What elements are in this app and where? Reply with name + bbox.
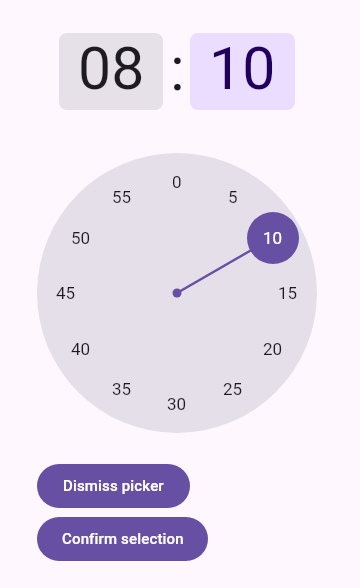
staticText: 08 (78, 34, 145, 103)
staticText: 55 (112, 187, 132, 207)
staticText: : (170, 33, 185, 104)
staticText: 35 (112, 379, 132, 399)
button[interactable]: 0 (37, 153, 317, 433)
staticText: 15 (278, 283, 298, 303)
button[interactable]: 10 (190, 33, 295, 110)
button[interactable]: Confirm selection (37, 517, 208, 561)
staticText: 30 (167, 394, 187, 414)
staticText: 5 (228, 187, 238, 207)
staticText: 10 (209, 34, 276, 103)
staticText: Dismiss picker (63, 477, 164, 495)
staticText: 50 (71, 228, 91, 248)
staticText: Confirm selection (62, 530, 184, 548)
staticText: 20 (263, 339, 283, 359)
button[interactable]: 08 (59, 33, 163, 110)
staticText: 10 (263, 228, 283, 248)
staticText: 25 (223, 379, 243, 399)
staticText: 40 (71, 339, 91, 359)
button[interactable]: Dismiss picker (37, 464, 190, 508)
staticText: 45 (56, 283, 76, 303)
staticText: 0 (172, 172, 182, 192)
